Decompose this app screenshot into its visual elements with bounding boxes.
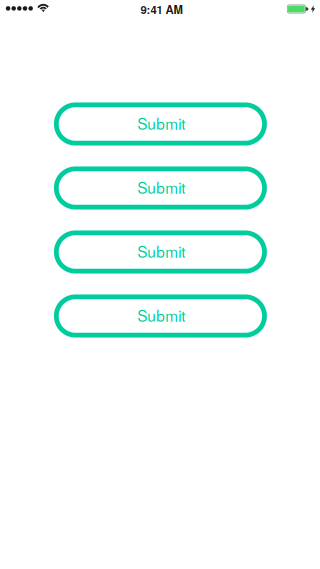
staticText: 9:41 AM: [141, 1, 183, 17]
staticText: Submit: [137, 304, 185, 326]
button[interactable]: Submit: [53, 102, 266, 146]
staticText: Submit: [137, 240, 185, 262]
staticText: Submit: [137, 176, 185, 198]
button[interactable]: Submit: [53, 294, 266, 337]
button[interactable]: Submit: [53, 166, 266, 209]
button[interactable]: Submit: [53, 230, 266, 273]
staticText: Submit: [137, 112, 185, 134]
